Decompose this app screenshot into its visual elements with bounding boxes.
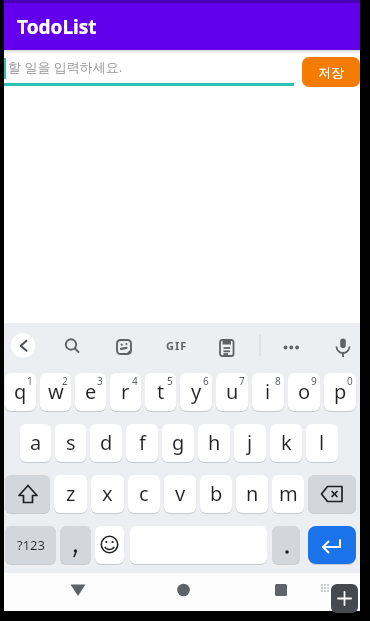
staticText: 9 <box>311 374 317 388</box>
button[interactable]: w <box>40 373 71 411</box>
button[interactable] <box>5 475 50 513</box>
staticText: 4 <box>132 374 138 388</box>
staticText: 2 <box>62 374 68 388</box>
staticText: s <box>66 429 76 456</box>
button[interactable] <box>308 475 356 513</box>
staticText: n <box>246 480 259 507</box>
button[interactable]: h <box>198 424 230 462</box>
button[interactable]: v <box>164 475 196 513</box>
button[interactable]: j <box>234 424 266 462</box>
button[interactable]: l <box>306 424 338 462</box>
staticText: ?123 <box>17 536 45 554</box>
button[interactable]: e <box>75 373 106 411</box>
button[interactable]: u <box>216 373 248 411</box>
button[interactable]: c <box>128 475 160 513</box>
staticText: 할 일을 입력하세요. <box>8 58 123 76</box>
button[interactable]: t <box>145 373 176 411</box>
staticText: b <box>210 480 223 507</box>
button[interactable] <box>122 573 241 611</box>
staticText: 5 <box>167 374 173 388</box>
button[interactable]: q <box>5 373 36 411</box>
button[interactable]: g <box>162 424 194 462</box>
button[interactable] <box>308 526 356 564</box>
staticText: p <box>334 378 347 405</box>
staticText: q <box>14 378 27 405</box>
button[interactable] <box>95 526 124 564</box>
button[interactable]: p <box>324 373 356 411</box>
staticText: k <box>281 429 292 456</box>
button[interactable]: 저장 <box>302 57 360 87</box>
staticText: e <box>85 378 97 405</box>
staticText: c <box>139 480 149 507</box>
button[interactable]: n <box>236 475 268 513</box>
button[interactable]: k <box>270 424 302 462</box>
button[interactable]: o <box>288 373 320 411</box>
staticText: o <box>298 378 311 405</box>
staticText: l <box>319 429 325 456</box>
button[interactable]: m <box>272 475 304 513</box>
staticText: y <box>191 378 202 405</box>
button[interactable]: z <box>54 475 87 513</box>
staticText: 8 <box>275 374 281 388</box>
staticText: j <box>247 429 253 456</box>
staticText: x <box>102 480 113 507</box>
button[interactable] <box>4 573 122 611</box>
button[interactable]: y <box>180 373 212 411</box>
staticText: 저장 <box>318 64 344 80</box>
staticText: 0 <box>347 374 353 388</box>
staticText: w <box>48 378 64 405</box>
button[interactable]: a <box>20 424 51 462</box>
staticText: 7 <box>239 374 245 388</box>
button[interactable]: b <box>200 475 232 513</box>
staticText: r <box>121 378 130 405</box>
staticText: u <box>226 378 239 405</box>
button[interactable]: r <box>110 373 141 411</box>
staticText: v <box>175 480 186 507</box>
staticText: i <box>265 378 271 405</box>
staticText: t <box>157 378 165 405</box>
button[interactable] <box>331 584 358 613</box>
staticText: g <box>172 429 185 456</box>
staticText: m <box>279 480 298 507</box>
button[interactable]: f <box>126 424 158 462</box>
button[interactable]: GIF <box>166 338 188 353</box>
button[interactable]: d <box>90 424 122 462</box>
staticText: 3 <box>97 374 103 388</box>
button[interactable]: s <box>55 424 86 462</box>
staticText: d <box>100 429 113 456</box>
staticText: f <box>139 429 146 456</box>
button[interactable] <box>241 573 360 611</box>
button[interactable]: i <box>252 373 284 411</box>
staticText: a <box>30 429 42 456</box>
button[interactable] <box>272 526 300 564</box>
staticText: 1 <box>27 374 33 388</box>
button[interactable] <box>60 526 91 564</box>
staticText: h <box>208 429 221 456</box>
button[interactable]: ?123 <box>5 526 56 564</box>
staticText: 6 <box>203 374 209 388</box>
staticText: TodoList <box>17 14 97 40</box>
button[interactable]: x <box>91 475 124 513</box>
staticText: z <box>66 480 76 507</box>
